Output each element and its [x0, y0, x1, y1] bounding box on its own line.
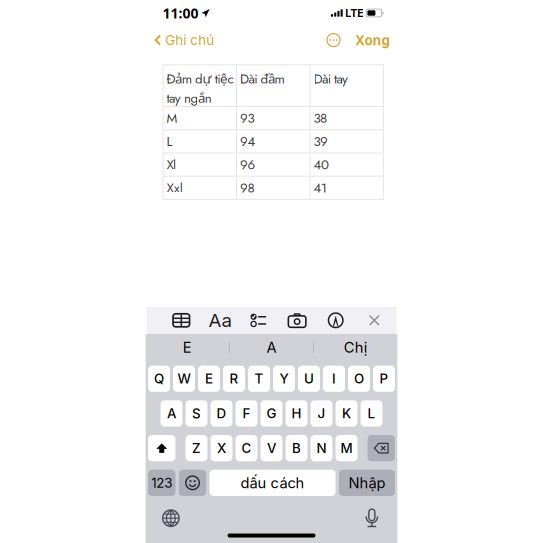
staticText: D [216, 405, 226, 421]
staticText: 123 [151, 475, 172, 491]
staticText: S [192, 405, 201, 421]
staticText: N [316, 440, 326, 456]
button[interactable]: Nhập [339, 470, 395, 496]
button[interactable]: D [211, 400, 232, 427]
staticText: Aa [208, 309, 231, 332]
button[interactable]: Q [148, 366, 170, 392]
button[interactable]: Ghi chú [154, 28, 214, 52]
staticText: Chị [344, 339, 368, 356]
button[interactable]: K [336, 400, 357, 427]
staticText: C [241, 440, 251, 456]
button[interactable]: S [186, 400, 207, 427]
staticText: K [342, 405, 351, 421]
staticText: Q [154, 371, 164, 387]
staticText: Đảm dự tiệc tay ngắn [166, 69, 233, 108]
button[interactable]: P [373, 366, 395, 392]
staticText: A [167, 405, 176, 421]
staticText: Y [279, 371, 288, 387]
staticText: Ghi chú [165, 32, 214, 48]
staticText: V [267, 440, 276, 456]
button[interactable]: Z [186, 435, 207, 461]
button[interactable]: I [323, 366, 345, 392]
button[interactable]: Emoji [179, 470, 206, 496]
button[interactable]: W [173, 366, 195, 392]
button[interactable]: Close keyboard [355, 307, 394, 334]
staticText: L [166, 132, 172, 151]
button[interactable]: More options [326, 29, 340, 51]
button[interactable]: Markup [316, 307, 355, 334]
button[interactable]: H [286, 400, 307, 427]
staticText: M [340, 440, 352, 456]
button[interactable]: E [146, 334, 229, 361]
button[interactable]: Switch keyboard [157, 505, 185, 531]
button[interactable]: U [298, 366, 320, 392]
button[interactable]: C [236, 435, 257, 461]
button[interactable]: O [348, 366, 370, 392]
staticText: Dài tay [313, 69, 348, 89]
staticText: 41 [313, 178, 327, 197]
button[interactable]: Delete [368, 435, 395, 461]
button[interactable]: L [361, 400, 382, 427]
staticText: LTE [345, 6, 363, 19]
staticText: Xong [355, 31, 389, 49]
staticText: E [183, 339, 192, 356]
staticText: M [166, 109, 177, 128]
staticText: 94 [240, 132, 256, 151]
staticText: 40 [313, 155, 329, 174]
staticText: H [291, 405, 301, 421]
staticText: Z [192, 440, 201, 456]
staticText: W [177, 371, 190, 387]
staticText: A [266, 339, 276, 356]
button[interactable]: Xong [340, 27, 389, 53]
staticText: G [266, 405, 276, 421]
button[interactable]: A [161, 400, 182, 427]
button[interactable]: T [248, 366, 270, 392]
staticText: Dài đầm [240, 69, 285, 89]
button[interactable]: V [261, 435, 282, 461]
staticText: E [205, 371, 213, 387]
staticText: Xl [166, 155, 176, 174]
button[interactable]: Shift [148, 435, 175, 461]
button[interactable]: B [286, 435, 307, 461]
staticText: 96 [240, 155, 256, 174]
button[interactable]: M [336, 435, 357, 461]
staticText: Xxl [166, 178, 183, 197]
staticText: P [379, 371, 388, 387]
button[interactable]: E [198, 366, 220, 392]
button[interactable]: Format text [201, 307, 239, 334]
button[interactable]: Camera [278, 307, 316, 334]
staticText: B [292, 440, 301, 456]
staticText: 93 [240, 109, 255, 128]
staticText: F [242, 405, 250, 421]
staticText: dấu cách [241, 474, 305, 492]
staticText: T [254, 371, 263, 387]
button[interactable]: Checklist [239, 307, 278, 334]
button[interactable]: Table [162, 307, 201, 334]
button[interactable]: A [230, 334, 313, 361]
staticText: I [332, 371, 336, 387]
button[interactable]: Chị [314, 334, 397, 361]
button[interactable]: 123 [148, 470, 175, 496]
staticText: J [317, 405, 325, 421]
button[interactable]: dấu cách [210, 470, 336, 496]
button[interactable]: N [311, 435, 332, 461]
staticText: 11:00 [162, 3, 198, 23]
staticText: X [217, 440, 226, 456]
button[interactable]: Dictate [359, 505, 384, 531]
staticText: O [354, 371, 364, 387]
button[interactable]: G [261, 400, 282, 427]
staticText: 39 [313, 132, 328, 151]
button[interactable]: F [236, 400, 257, 427]
staticText: 98 [240, 178, 255, 197]
staticText: U [304, 371, 314, 387]
staticText: R [229, 371, 238, 387]
staticText: 38 [313, 109, 327, 128]
staticText: Nhập [348, 474, 385, 492]
staticText: L [367, 405, 375, 421]
button[interactable]: Y [273, 366, 295, 392]
button[interactable]: J [311, 400, 332, 427]
button[interactable]: R [223, 366, 245, 392]
button[interactable]: X [211, 435, 232, 461]
